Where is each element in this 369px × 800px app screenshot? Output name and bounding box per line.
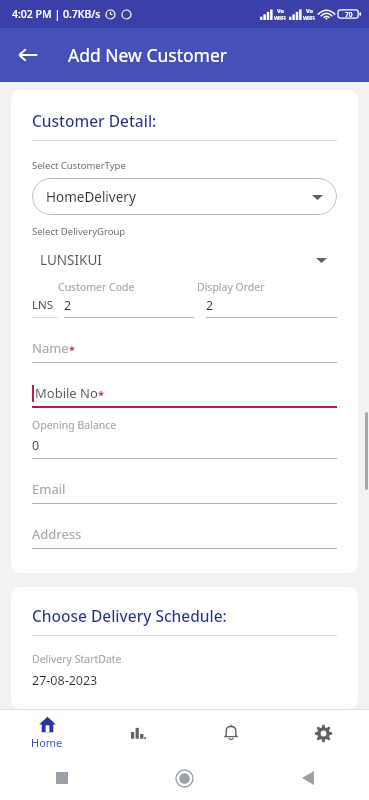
button[interactable]: LUNSIKUI [32,244,337,276]
staticText: Select DeliveryGroup [32,225,126,238]
staticText: Display Order [197,280,265,294]
button[interactable]: Name [32,339,337,363]
button[interactable]: Settings [277,710,369,756]
button[interactable]: Recent apps [0,756,123,800]
staticText: Customer Detail: [32,110,157,131]
staticText: Email [32,480,66,498]
staticText: Home [31,735,63,750]
button[interactable]: Back [6,33,50,77]
staticText: Vo [277,7,284,14]
staticText: Select CustomerType [32,159,126,172]
staticText: * [69,342,75,357]
button[interactable]: Home [0,710,93,756]
staticText: Name [32,339,69,357]
button[interactable]: Address [32,525,337,549]
staticText: LNS [32,297,54,313]
staticText: Customer Code [58,280,135,294]
button[interactable]: Mobile No [32,384,337,408]
staticText: 70 [345,10,353,19]
button[interactable]: Reports [93,710,185,756]
staticText: Vo [306,7,313,14]
staticText: Choose Delivery Schedule: [32,605,227,626]
staticText: 27-08-2023 [32,672,98,689]
staticText: * [98,387,104,402]
staticText: WiFi [303,14,315,21]
staticText: 0 [32,437,40,454]
staticText: Add New Customer [68,43,228,67]
staticText: 4:02 PM | 0.7KB/s [12,7,101,21]
button[interactable]: Back [246,756,369,800]
staticText: Delivery StartDate [32,652,122,666]
button[interactable]: Home [123,756,246,800]
button[interactable]: Email [32,480,337,504]
button[interactable]: HomeDelivery [32,178,337,215]
staticText: Mobile No [35,384,98,402]
staticText: 2 [64,297,72,314]
staticText: Address [32,525,82,543]
staticText: 2 [206,297,214,314]
staticText: WiFi [274,14,286,21]
button[interactable]: Opening Balance [32,418,337,459]
staticText: HomeDelivery [46,188,312,206]
staticText: LUNSIKUI [40,251,316,269]
button[interactable]: Notifications [185,710,277,756]
staticText: Opening Balance [32,418,117,432]
